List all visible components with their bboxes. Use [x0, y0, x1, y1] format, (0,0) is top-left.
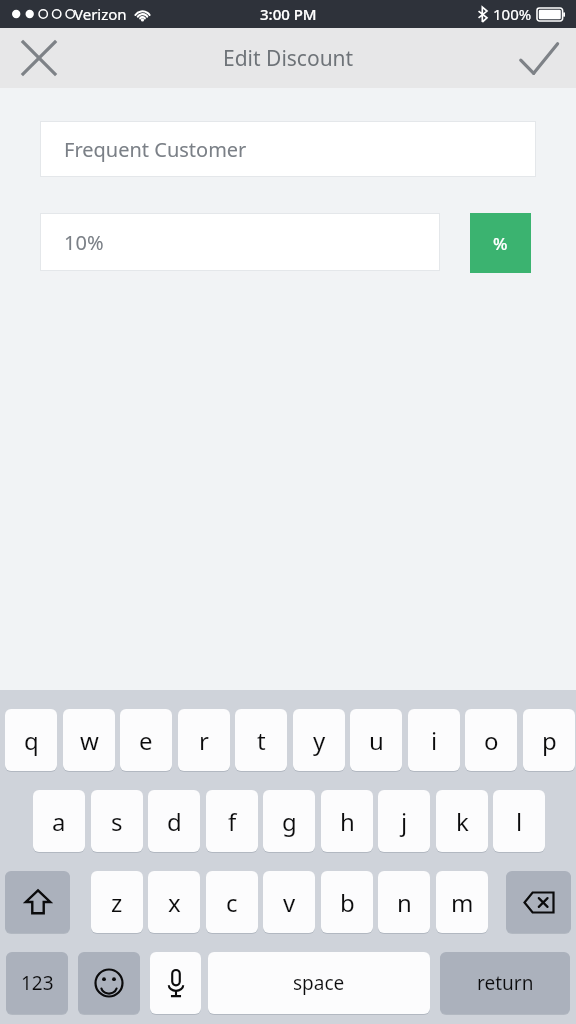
staticText: Edit Discount: [223, 44, 354, 73]
staticText: w: [80, 724, 99, 757]
button[interactable]: q: [5, 709, 57, 771]
button[interactable]: j: [378, 790, 430, 852]
staticText: %: [493, 232, 508, 255]
button[interactable]: Dictation: [150, 952, 201, 1014]
button[interactable]: t: [235, 709, 287, 771]
staticText: n: [397, 886, 412, 919]
button[interactable]: Shift: [5, 871, 70, 933]
staticText: j: [401, 805, 408, 838]
staticText: l: [516, 805, 523, 838]
button[interactable]: g: [263, 790, 315, 852]
staticText: u: [369, 724, 384, 757]
button[interactable]: Numbers: [6, 952, 68, 1014]
staticText: c: [226, 886, 238, 919]
staticText: g: [282, 805, 297, 838]
staticText: t: [257, 724, 266, 757]
staticText: a: [52, 805, 66, 838]
staticText: z: [111, 886, 123, 919]
button[interactable]: f: [206, 790, 258, 852]
staticText: 123: [21, 970, 54, 996]
staticText: h: [340, 805, 355, 838]
button[interactable]: v: [263, 871, 315, 933]
staticText: d: [167, 805, 182, 838]
button[interactable]: Save: [502, 28, 576, 88]
button[interactable]: k: [436, 790, 488, 852]
staticText: m: [451, 886, 474, 919]
button[interactable]: n: [378, 871, 430, 933]
button[interactable]: w: [63, 709, 115, 771]
staticText: f: [228, 805, 237, 838]
button[interactable]: s: [91, 790, 143, 852]
staticText: b: [340, 886, 355, 919]
button[interactable]: 10%: [40, 213, 440, 271]
staticText: y: [313, 724, 326, 757]
staticText: k: [456, 805, 469, 838]
button[interactable]: space: [208, 952, 430, 1014]
staticText: 10%: [64, 229, 104, 256]
staticText: return: [477, 970, 534, 996]
button[interactable]: Close: [0, 28, 78, 88]
staticText: x: [168, 886, 181, 919]
button[interactable]: i: [408, 709, 460, 771]
button[interactable]: m: [436, 871, 488, 933]
button[interactable]: o: [465, 709, 517, 771]
button[interactable]: return: [440, 952, 570, 1014]
staticText: o: [484, 724, 499, 757]
button[interactable]: p: [523, 709, 575, 771]
button[interactable]: l: [493, 790, 545, 852]
staticText: i: [431, 724, 438, 757]
button[interactable]: y: [293, 709, 345, 771]
staticText: Frequent Customer: [64, 136, 247, 163]
button[interactable]: Backspace: [506, 871, 571, 933]
staticText: r: [199, 724, 209, 757]
staticText: s: [111, 805, 123, 838]
button[interactable]: x: [148, 871, 200, 933]
staticText: q: [24, 724, 39, 757]
button[interactable]: b: [321, 871, 373, 933]
button[interactable]: z: [91, 871, 143, 933]
staticText: 100%: [493, 4, 532, 24]
staticText: v: [283, 886, 296, 919]
button[interactable]: u: [350, 709, 402, 771]
staticText: 3:00 PM: [260, 4, 317, 24]
button[interactable]: %: [470, 213, 531, 273]
button[interactable]: h: [321, 790, 373, 852]
button[interactable]: d: [148, 790, 200, 852]
button[interactable]: r: [178, 709, 230, 771]
staticText: space: [293, 970, 345, 996]
staticText: e: [139, 724, 153, 757]
staticText: p: [542, 724, 557, 757]
button[interactable]: Frequent Customer: [40, 121, 536, 177]
button[interactable]: e: [120, 709, 172, 771]
button[interactable]: a: [33, 790, 85, 852]
button[interactable]: c: [206, 871, 258, 933]
button[interactable]: Emoji: [78, 952, 140, 1014]
staticText: Verizon: [74, 4, 127, 24]
